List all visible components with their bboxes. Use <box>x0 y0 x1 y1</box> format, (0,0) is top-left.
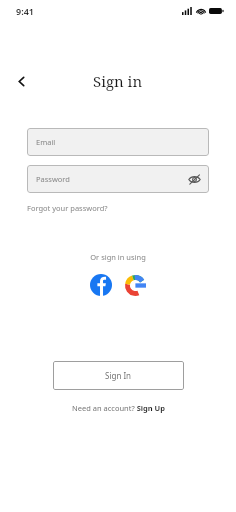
staticText: Email <box>36 137 56 147</box>
staticText: Forgot your password? <box>27 203 108 213</box>
staticText: Sign in <box>93 71 143 91</box>
button[interactable]: Back <box>10 70 32 92</box>
button[interactable]: Password <box>27 165 209 193</box>
staticText: Need an account? Sign Up <box>72 403 165 413</box>
button[interactable]: Forgot your password? <box>27 201 108 215</box>
button[interactable]: Sign In <box>53 361 184 390</box>
button[interactable]: Show password <box>186 171 202 187</box>
button[interactable]: Need an account? Sign Up <box>66 401 171 415</box>
button[interactable]: Sign in with Facebook <box>87 271 115 299</box>
staticText: Password <box>36 174 70 184</box>
staticText: Or sign in using <box>0 252 236 262</box>
button[interactable]: Email <box>27 128 209 156</box>
staticText: Sign In <box>105 370 132 381</box>
button[interactable]: Sign in with Google <box>121 271 149 299</box>
staticText: 9:41 <box>16 5 34 17</box>
